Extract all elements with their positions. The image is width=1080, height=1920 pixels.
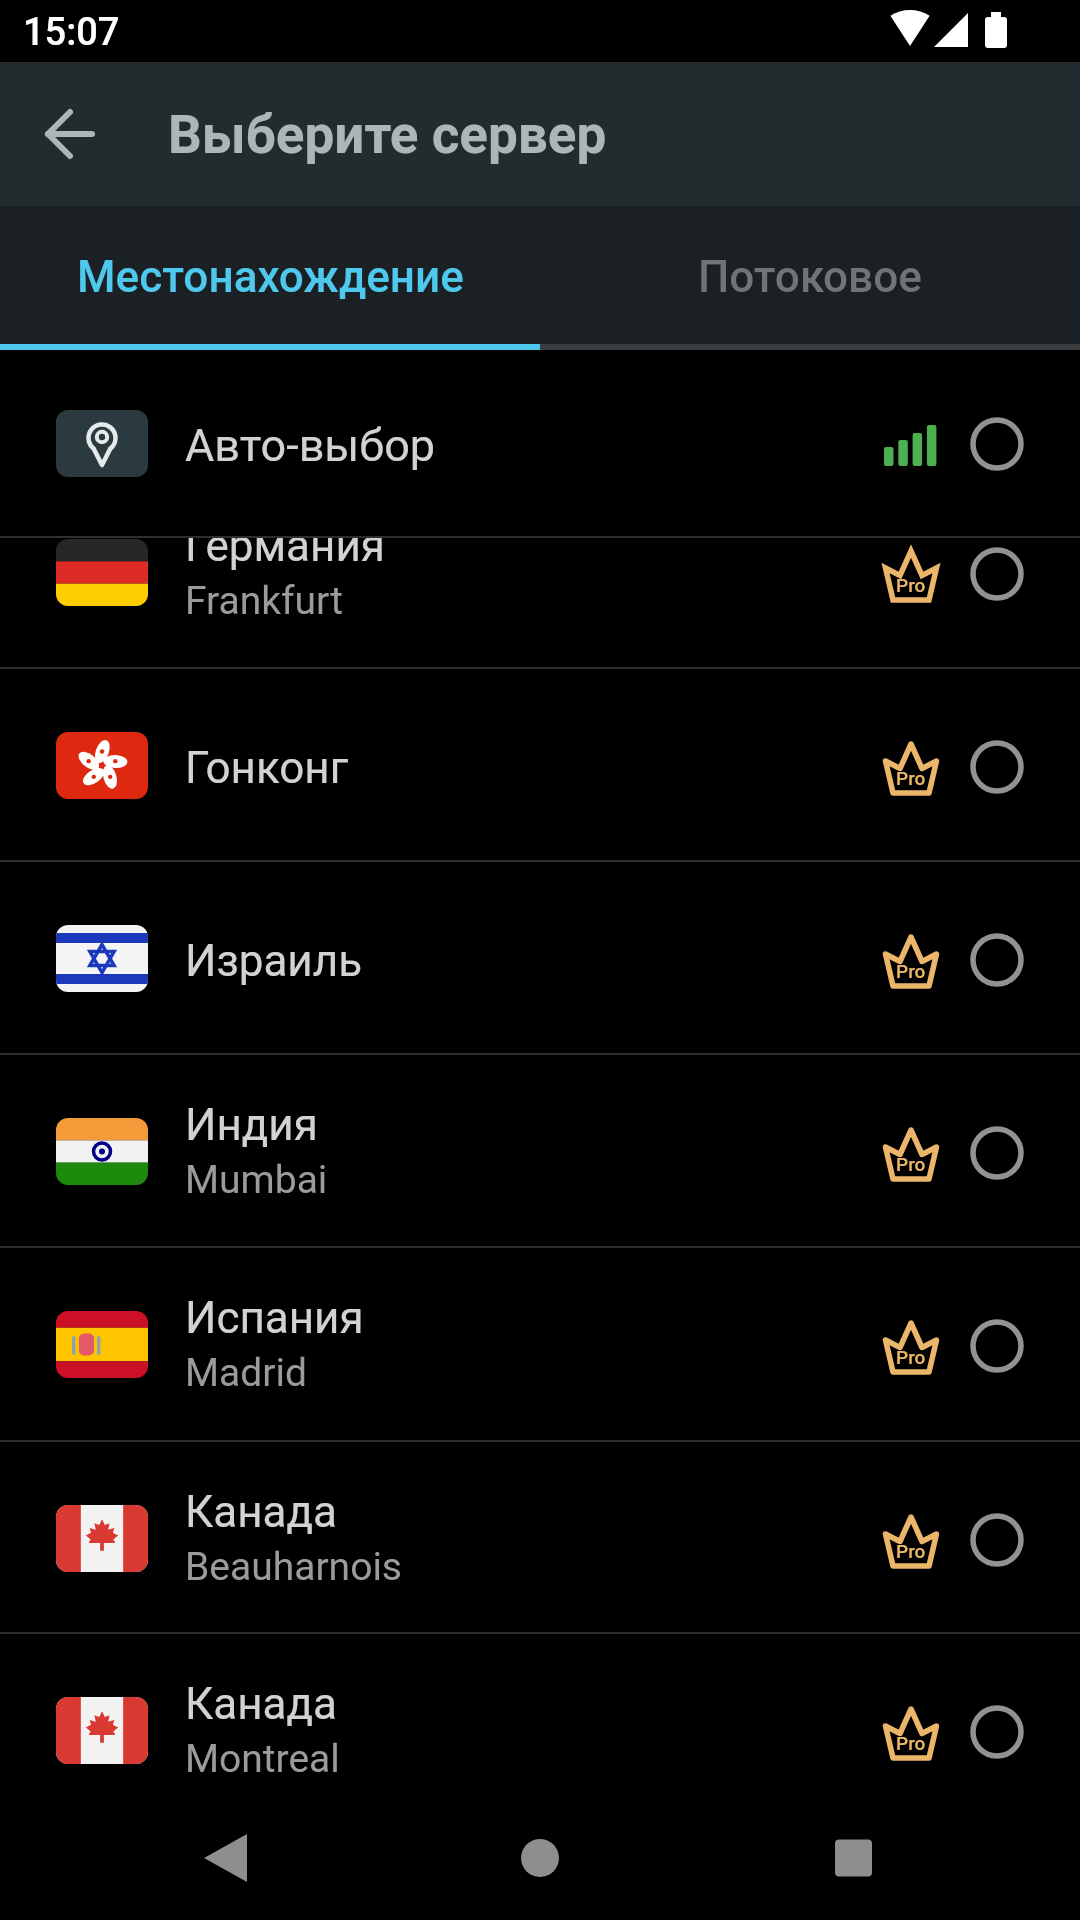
button[interactable] [0, 1830, 360, 1920]
staticText: Pro [896, 1540, 926, 1562]
staticText: Pro [896, 1153, 926, 1175]
staticText: Канада [185, 1678, 338, 1730]
staticText: Pro [896, 1346, 926, 1368]
staticText: Местонахождение [77, 251, 464, 303]
staticText: Madrid [185, 1350, 307, 1396]
staticText: Канада [185, 1486, 338, 1538]
staticText: Montreal [185, 1736, 340, 1782]
button[interactable] [42, 106, 98, 162]
staticText: Pro [896, 960, 926, 982]
staticText: 15:07 [23, 10, 120, 55]
button[interactable]: Потоковое [540, 206, 1080, 350]
button[interactable]: Израиль [0, 860, 1080, 1053]
staticText: Pro [896, 574, 926, 596]
button[interactable] [360, 1830, 720, 1920]
button[interactable]: Индия [0, 1053, 1080, 1246]
button[interactable]: Канада [0, 1440, 1080, 1633]
button[interactable]: Местонахождение [0, 206, 540, 350]
button[interactable]: Канада [0, 1632, 1080, 1825]
staticText: Индия [185, 1099, 318, 1151]
staticText: Выберите сервер [168, 104, 607, 166]
staticText: Авто-выбор [185, 419, 436, 472]
button[interactable] [720, 1830, 1080, 1920]
staticText: Mumbai [185, 1157, 328, 1203]
staticText: Beauharnois [185, 1544, 402, 1590]
button[interactable]: Германия [0, 474, 1080, 667]
staticText: Pro [896, 767, 926, 789]
staticText: Frankfurt [185, 578, 344, 624]
staticText: Германия [185, 520, 385, 572]
staticText: Израиль [185, 935, 363, 987]
button[interactable]: Авто-выбор [0, 350, 1080, 536]
staticText: Испания [185, 1292, 364, 1344]
staticText: Гонконг [185, 742, 349, 794]
staticText: Pro [896, 1732, 926, 1754]
button[interactable]: Испания [0, 1246, 1080, 1439]
button[interactable]: Гонконг [0, 667, 1080, 860]
staticText: Потоковое [698, 251, 922, 303]
